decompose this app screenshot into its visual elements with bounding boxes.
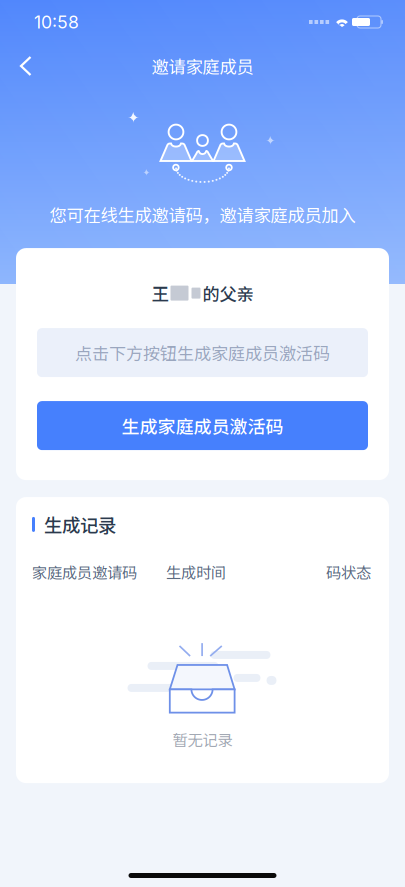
staticText: 的父亲 — [202, 280, 253, 306]
staticText: 家庭成员邀请码 — [32, 561, 137, 583]
staticText: 10:58 — [34, 11, 79, 33]
button[interactable]: 生成家庭成员激活码 — [16, 401, 389, 450]
staticText: 点击下方按钮生成家庭成员激活码 — [75, 340, 330, 365]
staticText: 暂无记录 — [172, 728, 232, 750]
staticText: 生成时间 — [166, 561, 226, 583]
staticText: 生成记录 — [44, 511, 116, 538]
staticText: 生成家庭成员激活码 — [121, 413, 283, 439]
button[interactable]: Back — [4, 44, 48, 88]
staticText: 码状态 — [326, 561, 371, 583]
staticText: 您可在线生成邀请码，邀请家庭成员加入 — [49, 202, 355, 227]
staticText: 邀请家庭成员 — [151, 53, 253, 79]
staticText: 王 — [151, 280, 168, 306]
